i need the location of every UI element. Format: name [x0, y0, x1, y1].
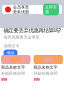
staticText: 补贴价格说明 [1, 71, 25, 76]
staticText: 说明文字 [3, 44, 19, 48]
staticText: 会员享受更多优惠 [13, 5, 29, 14]
staticText: 商品名称文字 [1, 65, 25, 70]
button[interactable]: 立即开通 [43, 4, 59, 15]
staticText: 继续 [6, 50, 14, 55]
staticText: 放弃优惠将无法享受 [3, 35, 39, 40]
staticText: ¥99 [1, 77, 7, 82]
staticText: 商品名称文字 [33, 65, 57, 70]
staticText: 补贴价格说明 [33, 71, 57, 76]
button[interactable]: 继续 [3, 49, 17, 56]
staticText: ¥99 [33, 77, 39, 82]
staticText: 确定要丢弃优惠再结算吗? [3, 27, 60, 34]
staticText: 立即开通 [45, 5, 57, 14]
